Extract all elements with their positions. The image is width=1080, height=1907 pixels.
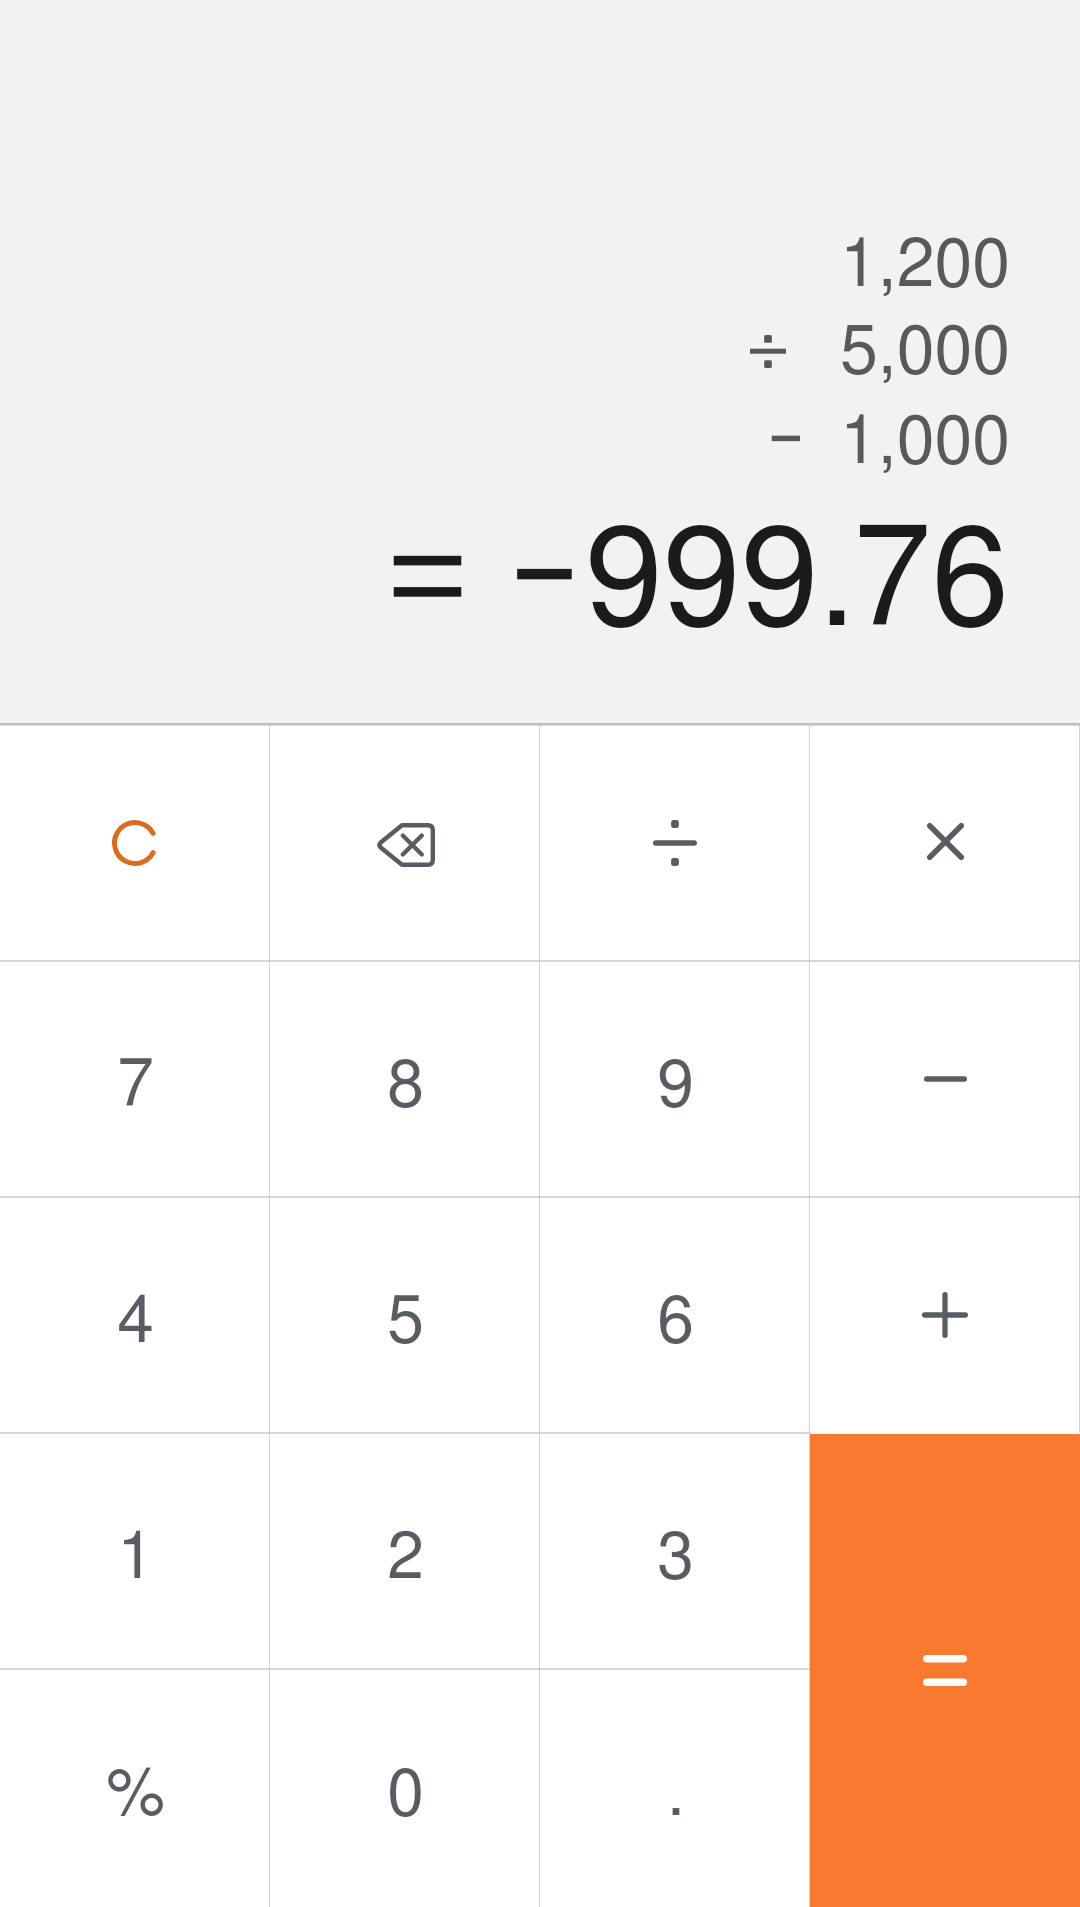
button[interactable]: 6 — [540, 1197, 810, 1433]
button[interactable]: 8 — [270, 961, 540, 1197]
button[interactable]: Multiply — [810, 725, 1080, 961]
button[interactable]: 2 — [270, 1433, 540, 1669]
button[interactable]: Minus — [810, 961, 1080, 1197]
staticText: 1,000 — [840, 409, 1011, 477]
button[interactable]: 5 — [270, 1197, 540, 1433]
staticText: 8 — [387, 1053, 424, 1119]
staticText: 6 — [657, 1289, 694, 1355]
staticText: 5,000 — [840, 319, 1011, 387]
button[interactable]: % — [0, 1669, 270, 1907]
staticText: 1 — [117, 1525, 154, 1591]
staticText: % — [106, 1762, 165, 1828]
button[interactable]: 0 — [270, 1669, 540, 1907]
button[interactable]: 3 — [540, 1433, 810, 1669]
button[interactable]: Divide — [540, 725, 810, 961]
button[interactable]: 1 — [0, 1433, 270, 1669]
staticText: 9 — [657, 1053, 694, 1119]
other: Minus — [924, 1074, 967, 1084]
button[interactable]: . — [540, 1669, 810, 1907]
other: Multiply — [927, 823, 964, 860]
button[interactable]: Equals — [810, 1434, 1080, 1907]
other: Clear — [111, 819, 159, 867]
other: Equals — [923, 1655, 967, 1686]
button[interactable]: Backspace — [270, 725, 540, 961]
staticText: . — [667, 1762, 684, 1828]
button[interactable]: Plus — [810, 1197, 1080, 1433]
staticText: 2 — [387, 1525, 424, 1591]
button[interactable]: 7 — [0, 961, 270, 1197]
button[interactable]: Clear — [0, 725, 270, 961]
other: Divide — [652, 818, 698, 868]
button[interactable]: 9 — [540, 961, 810, 1197]
staticText: 7 — [117, 1053, 154, 1119]
staticText: 1,200 — [840, 232, 1011, 300]
button[interactable]: 4 — [0, 1197, 270, 1433]
staticText: 3 — [657, 1525, 694, 1591]
other: Plus — [922, 1292, 968, 1338]
other: Backspace — [376, 823, 435, 867]
staticText: 5 — [387, 1289, 424, 1355]
staticText: 999.76 — [585, 513, 1010, 653]
staticText: 4 — [117, 1289, 154, 1355]
staticText: 0 — [387, 1762, 424, 1828]
